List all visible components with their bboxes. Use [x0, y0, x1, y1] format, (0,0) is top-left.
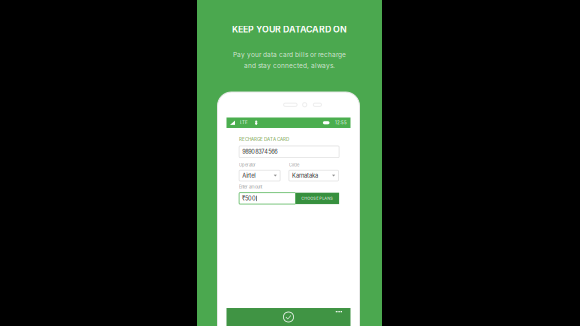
staticText: Circle [289, 163, 299, 168]
button[interactable]: Karnataka [289, 170, 338, 181]
staticText: LTE [240, 120, 248, 125]
staticText: and stay connected, always. [244, 62, 335, 69]
staticText: Operator [239, 163, 256, 168]
staticText: 12:55 [335, 120, 347, 125]
staticText: Enter amount [239, 184, 262, 189]
button[interactable]: CHOOSE PLANS [296, 193, 339, 204]
button[interactable]: Airtel [239, 170, 280, 181]
button[interactable]: ₹500 [239, 193, 296, 204]
staticText: Airtel [242, 172, 255, 179]
staticText: KEEP YOUR DATACARD ON [232, 24, 347, 35]
button[interactable]: 98908374566 [239, 146, 339, 158]
staticText: Pay your data card bills or recharge [233, 51, 346, 58]
staticText: ₹500 [242, 195, 256, 202]
staticText: CHOOSE PLANS [301, 196, 333, 201]
staticText: RECHARGE DATA CARD [239, 136, 289, 142]
staticText: Karnataka [292, 172, 318, 179]
button[interactable]: Confirm recharge [283, 311, 294, 323]
staticText: 98908374566 [242, 148, 277, 155]
button[interactable]: More options [336, 311, 342, 312]
